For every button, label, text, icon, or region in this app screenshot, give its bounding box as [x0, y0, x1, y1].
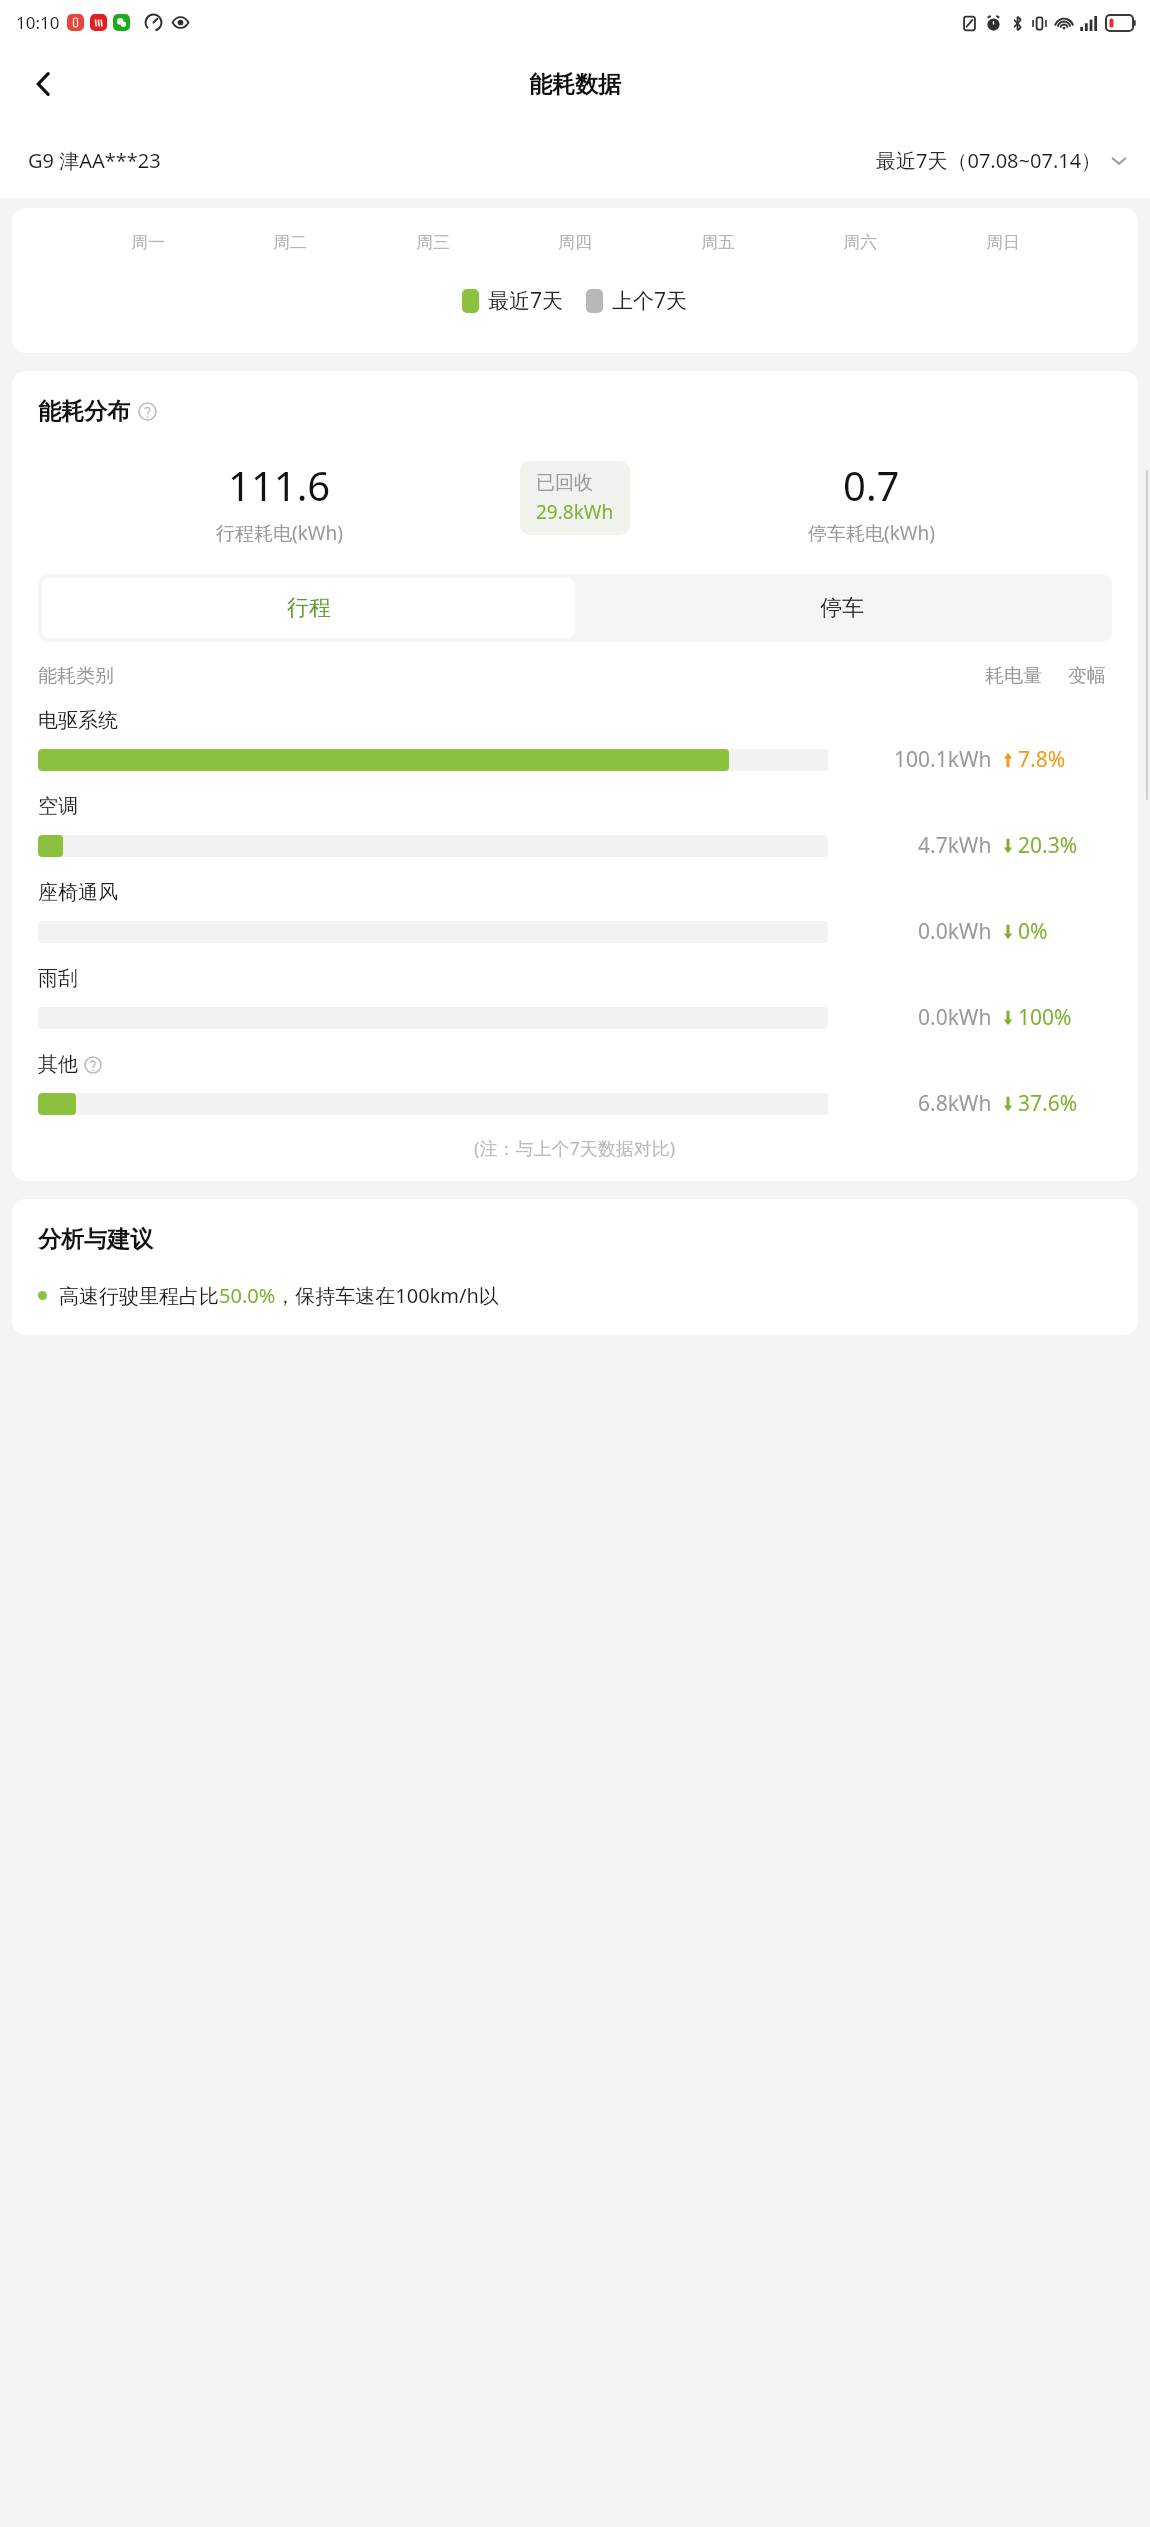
button[interactable]: 周四: [552, 230, 598, 255]
button[interactable]: Help: [84, 1056, 102, 1074]
staticText: 周日: [986, 232, 1020, 253]
staticText: 37.6%: [1018, 1089, 1078, 1118]
staticText: 耗电量: [985, 664, 1042, 688]
button[interactable]: 周一: [125, 230, 171, 255]
staticText: 其他: [38, 1052, 78, 1077]
staticText: 最近7天: [488, 286, 564, 315]
staticText: 周五: [701, 232, 735, 253]
staticText: 周三: [416, 232, 450, 253]
staticText: 雨刮: [38, 966, 78, 991]
staticText: 能耗数据: [529, 70, 621, 99]
staticText: 高速行驶里程占比50.0%，保持车速在100km/h以: [59, 1282, 499, 1309]
staticText: 行程耗电(kWh): [216, 520, 343, 546]
staticText: 已回收: [536, 471, 593, 495]
staticText: 29.8kWh: [536, 499, 614, 525]
staticText: 周六: [843, 232, 877, 253]
button[interactable]: Back: [20, 60, 68, 108]
staticText: 周一: [131, 232, 165, 253]
staticText: 100%: [1018, 1003, 1072, 1032]
button[interactable]: 周二: [267, 230, 313, 255]
staticText: 座椅通风: [38, 880, 118, 905]
staticText: 4.7kWh: [918, 831, 992, 860]
button[interactable]: 停车: [575, 578, 1108, 638]
button[interactable]: 周六: [837, 230, 883, 255]
staticText: 100.1kWh: [894, 745, 992, 774]
staticText: 111.6: [228, 458, 331, 512]
button[interactable]: 周日: [980, 230, 1026, 255]
staticText: 最近7天（07.08~07.14）: [876, 147, 1102, 174]
button[interactable]: 行程: [42, 578, 575, 638]
button[interactable]: 周五: [695, 230, 741, 255]
staticText: 周二: [273, 232, 307, 253]
button[interactable]: 周三: [410, 230, 456, 255]
button[interactable]: Help: [138, 402, 157, 421]
staticText: (注：与上个7天数据对比): [474, 1136, 676, 1161]
staticText: 空调: [38, 794, 78, 819]
staticText: 停车耗电(kWh): [808, 520, 935, 546]
staticText: 20.3%: [1018, 831, 1078, 860]
staticText: 上个7天: [612, 286, 688, 315]
staticText: 10:10: [16, 11, 60, 34]
staticText: 能耗类别: [38, 664, 114, 688]
staticText: 变幅: [1068, 664, 1106, 688]
staticText: G9 津AA***23: [28, 147, 161, 174]
button[interactable]: 最近7天（07.08~07.14）: [876, 147, 1128, 174]
staticText: 0%: [1018, 917, 1048, 946]
staticText: 停车: [820, 594, 864, 622]
staticText: 7.8%: [1018, 745, 1066, 774]
staticText: 电驱系统: [38, 708, 118, 733]
staticText: 0.0kWh: [918, 1003, 992, 1032]
staticText: 行程: [287, 594, 331, 622]
staticText: 0.7: [843, 458, 900, 512]
staticText: 0.0kWh: [918, 917, 992, 946]
staticText: 6.8kWh: [918, 1089, 992, 1118]
staticText: 分析与建议: [38, 1225, 153, 1254]
staticText: 能耗分布: [38, 397, 130, 426]
staticText: 周四: [558, 232, 592, 253]
